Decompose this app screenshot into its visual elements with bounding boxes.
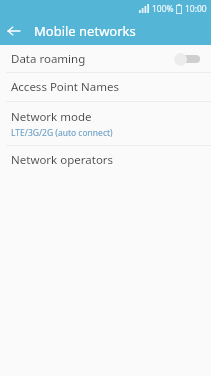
button[interactable]: Navigate up <box>0 17 28 45</box>
button[interactable]: Network operators <box>0 146 211 174</box>
staticText: 10:00 <box>185 3 207 15</box>
other: Data roaming off <box>174 52 200 66</box>
staticText: 100% <box>152 3 174 15</box>
button[interactable]: Network mode <box>0 102 211 145</box>
staticText: Data roaming <box>11 51 174 67</box>
staticText: Access Point Names <box>11 79 119 95</box>
staticText: LTE/3G/2G (auto connect) <box>11 127 113 139</box>
staticText: Network operators <box>11 152 114 168</box>
staticText: Network mode <box>11 109 92 125</box>
button[interactable]: Data roaming <box>0 45 211 72</box>
staticText: Mobile networks <box>34 22 136 40</box>
button[interactable]: Access Point Names <box>0 73 211 101</box>
